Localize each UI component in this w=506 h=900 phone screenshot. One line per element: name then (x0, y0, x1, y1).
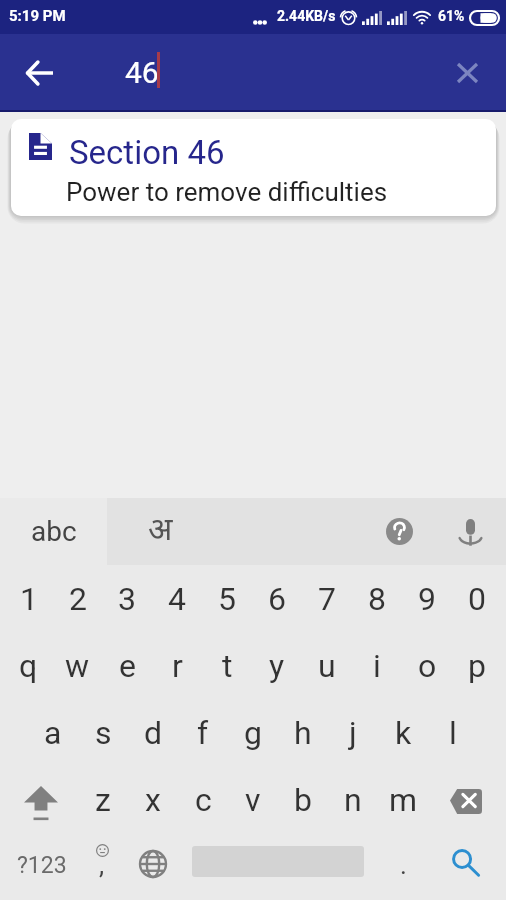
staticText: o (418, 647, 437, 685)
button[interactable]: 8 (352, 565, 402, 632)
button[interactable]: अ (107, 511, 214, 553)
staticText: 4 (168, 580, 186, 618)
button[interactable]: b (278, 766, 328, 833)
staticText: 8 (368, 580, 386, 618)
staticText: h (294, 714, 312, 752)
button[interactable]: ?123 (4, 833, 80, 900)
staticText: g (244, 714, 262, 752)
button[interactable]: Change language (128, 833, 178, 900)
button[interactable]: h (278, 699, 328, 766)
staticText: r (172, 647, 183, 685)
button[interactable]: 3 (102, 565, 152, 632)
button[interactable]: 5 (202, 565, 252, 632)
staticText: d (144, 714, 163, 752)
staticText: j (349, 714, 357, 752)
staticText: k (395, 714, 412, 752)
button[interactable]: l (428, 699, 478, 766)
staticText: 2.44KB/s (277, 8, 336, 24)
button[interactable]: Shift (4, 766, 78, 833)
button[interactable]: s (78, 699, 128, 766)
button[interactable]: Section 46 (11, 119, 496, 216)
button[interactable]: Search (440, 833, 492, 900)
staticText: 2 (69, 580, 87, 618)
button[interactable]: y (252, 632, 302, 699)
button[interactable]: a (28, 699, 78, 766)
staticText: e (119, 647, 136, 685)
staticText: y (269, 647, 285, 685)
staticText: Section 46 (69, 133, 225, 172)
button[interactable]: Back (16, 49, 64, 97)
button[interactable]: n (328, 766, 378, 833)
staticText: 0 (468, 580, 486, 618)
button[interactable]: j (328, 699, 378, 766)
staticText: a (44, 714, 62, 752)
button[interactable]: 7 (302, 565, 352, 632)
staticText: 3 (118, 580, 136, 618)
button[interactable]: c (178, 766, 228, 833)
staticText: Power to remove difficulties (66, 177, 388, 207)
staticText: x (145, 781, 161, 819)
staticText: 1 (20, 580, 38, 618)
staticText: . (400, 850, 407, 880)
staticText: 61% (438, 8, 465, 24)
staticText: अ (148, 511, 173, 553)
staticText: u (318, 647, 336, 685)
button[interactable]: Comma (80, 833, 126, 900)
staticText: q (19, 647, 38, 685)
button[interactable]: Voice input (446, 498, 494, 565)
staticText: c (195, 781, 212, 819)
button[interactable]: abc (0, 498, 107, 565)
staticText: f (197, 714, 209, 752)
staticText: s (95, 714, 112, 752)
staticText: z (95, 781, 111, 819)
button[interactable]: 6 (252, 565, 302, 632)
button[interactable]: 0 (452, 565, 502, 632)
staticText: m (389, 781, 418, 819)
button[interactable]: 9 (402, 565, 452, 632)
staticText: ?123 (17, 852, 67, 879)
staticText: abc (31, 515, 77, 548)
staticText: 7 (318, 580, 336, 618)
staticText: , (99, 850, 105, 880)
button[interactable]: Period (378, 833, 428, 900)
staticText: 5 (218, 580, 236, 618)
button[interactable]: Backspace (428, 766, 502, 833)
staticText: 5:19 PM (9, 7, 66, 25)
staticText: l (449, 714, 457, 752)
staticText: i (373, 647, 381, 685)
button[interactable]: f (178, 699, 228, 766)
button[interactable]: x (128, 766, 178, 833)
staticText: 46 (125, 55, 159, 90)
button[interactable]: Help (375, 498, 423, 565)
button[interactable]: u (302, 632, 352, 699)
staticText: b (294, 781, 312, 819)
button[interactable]: m (378, 766, 428, 833)
staticText: t (222, 647, 233, 685)
button[interactable]: 1 (4, 565, 53, 632)
button[interactable]: r (152, 632, 202, 699)
button[interactable]: p (452, 632, 502, 699)
button[interactable]: d (128, 699, 178, 766)
button[interactable]: i (352, 632, 402, 699)
button[interactable]: q (4, 632, 53, 699)
button[interactable]: t (202, 632, 252, 699)
button[interactable]: o (402, 632, 452, 699)
staticText: p (468, 647, 486, 685)
button[interactable]: 2 (53, 565, 102, 632)
staticText: n (344, 781, 362, 819)
button[interactable]: Clear search (445, 51, 489, 95)
button[interactable]: k (378, 699, 428, 766)
button[interactable]: e (102, 632, 152, 699)
staticText: v (245, 781, 261, 819)
button[interactable]: g (228, 699, 278, 766)
button[interactable]: w (53, 632, 102, 699)
button[interactable]: v (228, 766, 278, 833)
staticText: w (65, 647, 90, 685)
button[interactable]: 4 (152, 565, 202, 632)
staticText: 6 (268, 580, 286, 618)
button[interactable]: z (78, 766, 128, 833)
staticText: 9 (418, 580, 436, 618)
